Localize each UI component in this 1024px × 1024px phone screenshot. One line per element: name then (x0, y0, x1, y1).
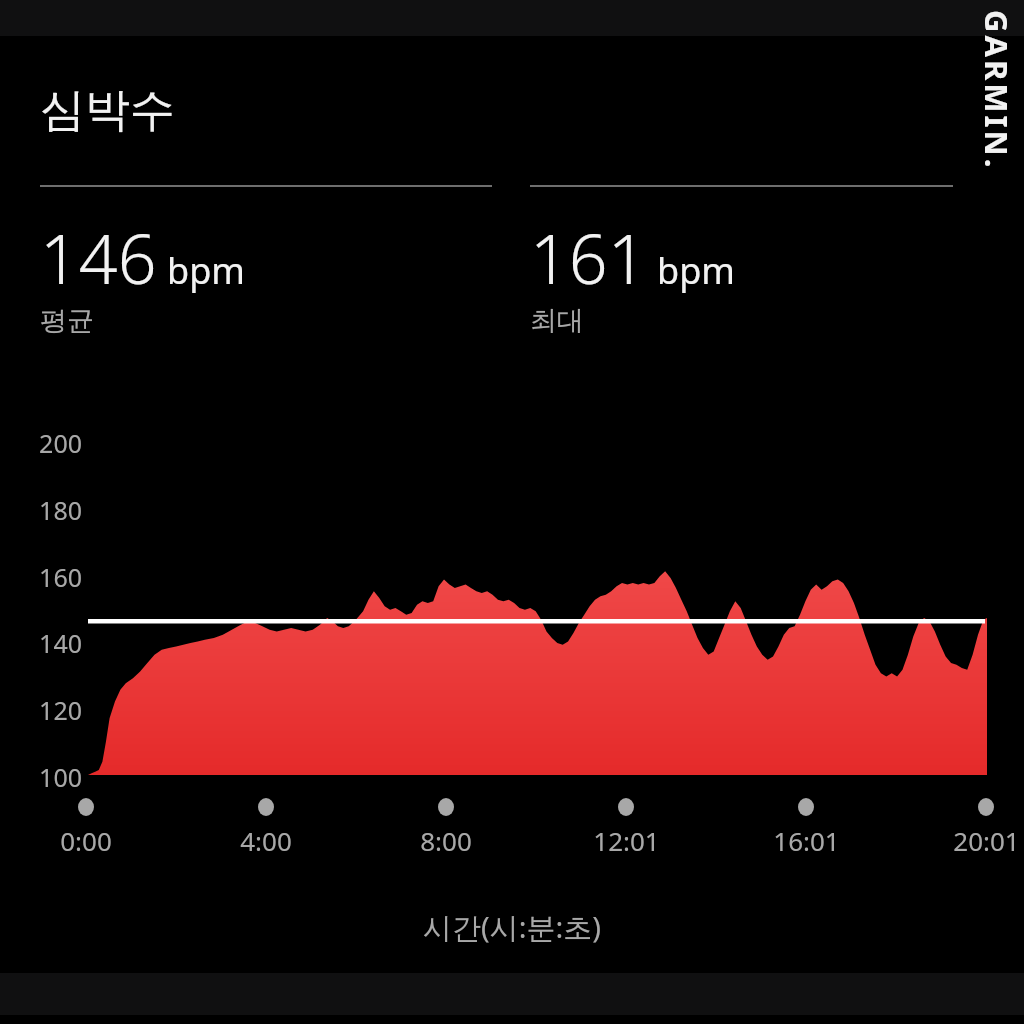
staticText: 160 (39, 560, 82, 594)
staticText: 140 (39, 626, 82, 660)
staticText: 16:01 (773, 823, 840, 858)
staticText: 100 (39, 760, 82, 794)
staticText: 200 (39, 426, 82, 460)
staticText: 4:00 (240, 823, 292, 858)
staticText: 시간(시:분:초) (423, 907, 601, 947)
staticText: 161 (530, 211, 647, 304)
button[interactable]: 146 (40, 211, 245, 304)
other: Heart rate graph (0, 0, 1024, 1024)
button[interactable]: 161 (530, 211, 735, 304)
staticText: bpm (167, 246, 245, 295)
staticText: 146 (40, 211, 157, 304)
staticText: 0:00 (60, 823, 112, 858)
staticText: GARMIN. (978, 10, 1018, 171)
staticText: 평균 (40, 304, 94, 338)
staticText: 심박수 (40, 82, 175, 139)
staticText: 12:01 (593, 823, 660, 858)
staticText: 최대 (530, 304, 584, 338)
staticText: 20:01 (953, 823, 1020, 858)
staticText: 120 (39, 693, 82, 727)
staticText: 180 (39, 493, 82, 527)
staticText: bpm (657, 246, 735, 295)
staticText: 8:00 (420, 823, 472, 858)
